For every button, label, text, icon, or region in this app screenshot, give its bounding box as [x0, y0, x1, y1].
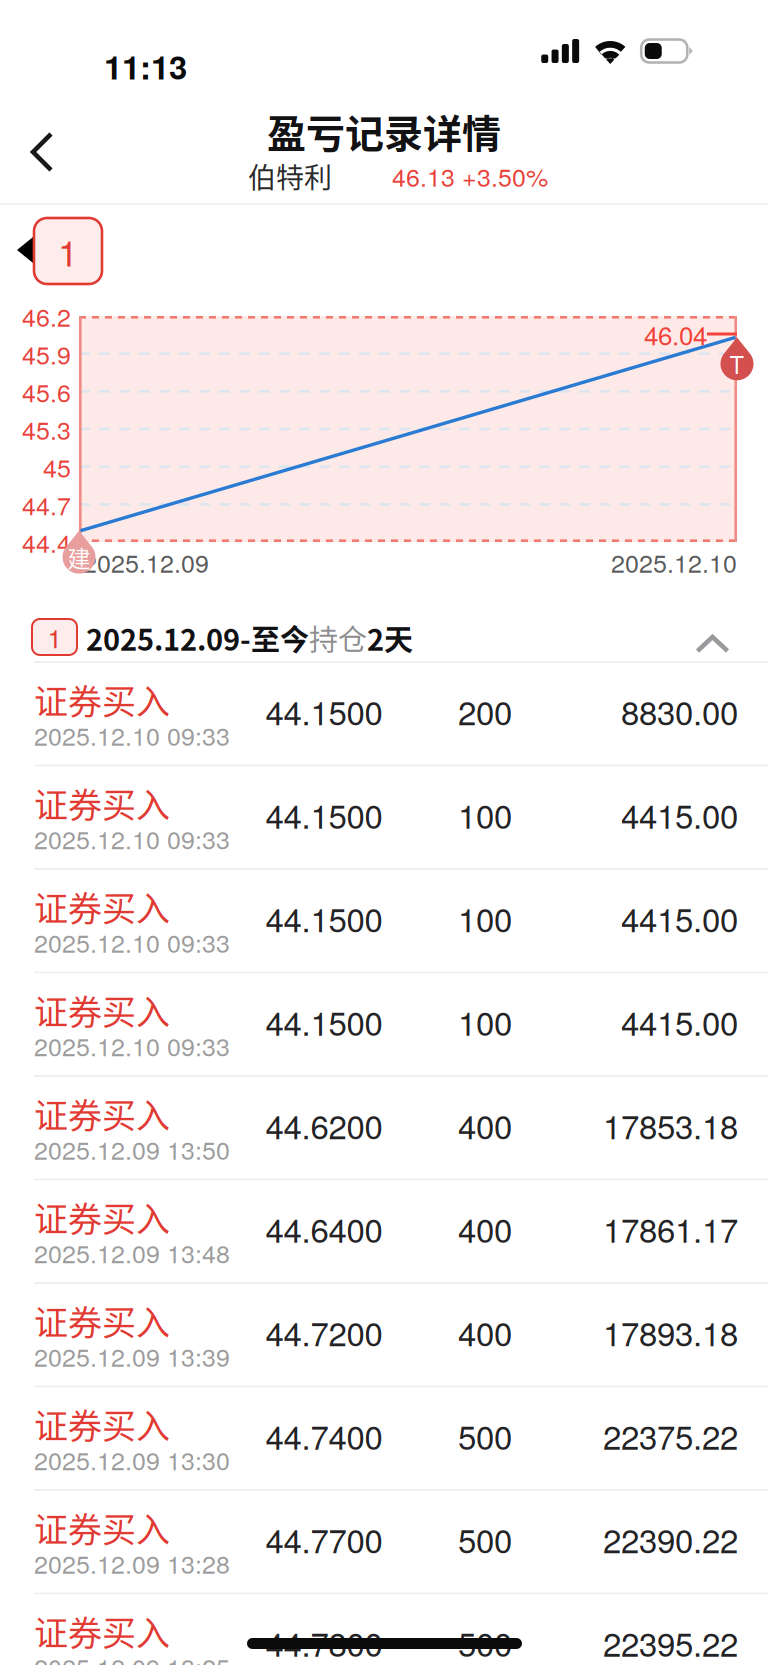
staticText: 证券买入 [34, 985, 170, 1035]
staticText: 4415.00 [621, 998, 738, 1045]
staticText: 伯特利 [248, 156, 332, 196]
staticText: 1 [47, 618, 61, 656]
staticText: 4415.00 [621, 894, 738, 942]
staticText: 证券买入 [34, 1606, 170, 1656]
staticText: 持仓 [309, 617, 367, 659]
staticText: 46.04 [644, 315, 707, 353]
staticText: 17893.18 [603, 1308, 738, 1356]
staticText: 2025.12.10 [611, 544, 737, 580]
staticText: 证券买入 [34, 1192, 170, 1242]
staticText: 100 [458, 998, 512, 1045]
button[interactable]: 证券买入 [0, 1077, 768, 1180]
staticText: 500 [458, 1412, 512, 1459]
staticText: 44.7700 [265, 1515, 382, 1563]
staticText: 45.6 [22, 373, 71, 409]
staticText: 盈亏记录详情 [267, 103, 501, 159]
staticText: T [729, 347, 744, 381]
staticText: 44.7200 [265, 1308, 382, 1356]
staticText: 8830.00 [621, 687, 738, 735]
staticText: 45.3 [22, 411, 71, 447]
staticText: 22390.22 [603, 1515, 738, 1563]
staticText: 44.1500 [265, 998, 382, 1045]
staticText: 45.9 [22, 336, 71, 372]
button[interactable]: 证券买入 [0, 663, 768, 766]
staticText: 2天 [367, 617, 413, 659]
staticText: 44.1500 [265, 894, 382, 942]
staticText: 2025.12.09 [83, 544, 209, 580]
staticText: 46.2 [22, 298, 71, 334]
staticText: 2025.12.10 09:33 [34, 924, 230, 960]
button[interactable]: 证券买入 [0, 1180, 768, 1284]
staticText: 400 [458, 1205, 512, 1252]
staticText: 200 [458, 687, 512, 735]
staticText: 400 [458, 1101, 512, 1149]
staticText: 2025.12.09 13:30 [34, 1442, 230, 1477]
staticText: 证券买入 [34, 778, 170, 828]
staticText: 44.4 [22, 524, 71, 560]
staticText: 500 [458, 1515, 512, 1563]
button[interactable]: 证券买入 [0, 973, 768, 1077]
staticText: 证券买入 [34, 1399, 170, 1449]
staticText: 400 [458, 1308, 512, 1356]
staticText: 证券买入 [34, 882, 170, 931]
staticText: 44.6200 [265, 1101, 382, 1149]
button[interactable]: Back [8, 118, 74, 184]
staticText: 证券买入 [34, 1089, 170, 1138]
staticText: 证券买入 [34, 1296, 170, 1345]
staticText: 44.7800 [265, 1619, 382, 1665]
staticText: 17853.18 [603, 1101, 738, 1149]
staticText: 2025.12.09 13:28 [34, 1545, 230, 1581]
staticText: 100 [458, 791, 512, 838]
button[interactable]: 证券买入 [0, 1594, 768, 1665]
staticText: 2025.12.09 13:48 [34, 1235, 230, 1270]
staticText: 44.1500 [265, 687, 382, 735]
staticText: 46.13 +3.50% [392, 158, 548, 194]
staticText: 44.7400 [265, 1412, 382, 1459]
staticText: 44.1500 [265, 791, 382, 838]
staticText: 证券买入 [34, 675, 170, 724]
staticText: 11:13 [104, 42, 187, 90]
staticText: 证券买入 [34, 1503, 170, 1552]
button[interactable]: 证券买入 [0, 1387, 768, 1491]
staticText: 500 [458, 1619, 512, 1665]
button[interactable]: 证券买入 [0, 1284, 768, 1387]
button[interactable]: 证券买入 [0, 870, 768, 973]
staticText: 44.6400 [265, 1205, 382, 1252]
staticText: 1 [58, 225, 78, 277]
staticText: 17861.17 [603, 1205, 738, 1252]
staticText: 2025.12.09 13:25 [34, 1649, 230, 1665]
staticText: 2025.12.10 09:33 [34, 1028, 230, 1063]
staticText: 2025.12.09 13:50 [34, 1131, 230, 1167]
staticText: 建 [67, 540, 90, 574]
button[interactable]: Collapse section [680, 605, 744, 661]
staticText: 4415.00 [621, 791, 738, 838]
staticText: 22375.22 [603, 1412, 738, 1459]
staticText: 2025.12.09-至今 [86, 617, 309, 659]
button[interactable]: 证券买入 [0, 1491, 768, 1594]
button[interactable]: Trade lot 1 [14, 216, 104, 286]
staticText: 45 [43, 449, 71, 485]
staticText: 2025.12.10 09:33 [34, 717, 230, 753]
staticText: 22395.22 [603, 1619, 738, 1665]
staticText: 2025.12.10 09:33 [34, 821, 230, 856]
staticText: 44.7 [22, 486, 71, 522]
button[interactable]: 证券买入 [0, 766, 768, 870]
staticText: 100 [458, 894, 512, 942]
staticText: 2025.12.09 13:39 [34, 1338, 230, 1374]
